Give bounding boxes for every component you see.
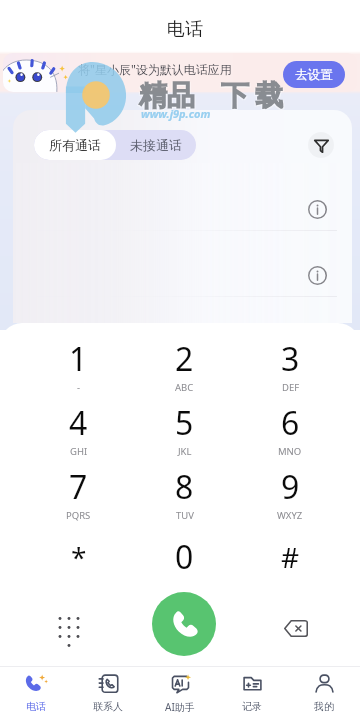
staticText: - <box>77 381 81 394</box>
staticText: 3 <box>281 337 300 381</box>
button[interactable]: 未接通话 <box>116 130 196 160</box>
staticText: 5 <box>175 401 194 445</box>
staticText: 电话 <box>26 700 46 713</box>
staticText: 联系人 <box>93 700 123 713</box>
staticText: 8 <box>175 465 194 509</box>
button[interactable]: 1 <box>26 333 131 397</box>
staticText: 未接通话 <box>130 137 182 153</box>
button[interactable]: 我的 <box>288 666 360 725</box>
staticText: 1 <box>69 337 88 381</box>
button[interactable]: 9 <box>237 461 343 525</box>
button[interactable]: AI助手 <box>144 666 216 725</box>
button[interactable]: 8 <box>131 461 237 525</box>
staticText: ABC <box>175 381 194 394</box>
staticText: 0 <box>175 535 194 579</box>
staticText: 精品 <box>138 79 194 114</box>
button[interactable]: 3 <box>237 333 343 397</box>
staticText: 我的 <box>314 700 334 713</box>
staticText: DEF <box>282 381 300 394</box>
staticText: 精品 <box>139 78 195 113</box>
staticText: 将"星小辰"设为默认电话应用 <box>78 61 232 77</box>
staticText: 7 <box>69 465 88 509</box>
button[interactable]: 7 <box>26 461 131 525</box>
staticText: TUV <box>176 509 194 522</box>
staticText: 精品 <box>140 79 196 114</box>
staticText: WXYZ <box>277 509 303 522</box>
button[interactable]: 所有通话 <box>34 130 116 160</box>
staticText: 所有通话 <box>49 137 101 153</box>
staticText: 2 <box>175 337 194 381</box>
staticText: 4 <box>69 401 88 445</box>
button[interactable]: 记录 <box>216 666 288 725</box>
button[interactable]: Call details <box>305 263 329 287</box>
button[interactable]: 去设置 <box>283 61 345 88</box>
staticText: MNO <box>278 445 302 458</box>
staticText: 下载 <box>218 78 286 113</box>
button[interactable]: Call <box>152 592 216 656</box>
staticText: 电话 <box>167 18 203 41</box>
button[interactable]: 5 <box>131 397 237 461</box>
staticText: AI助手 <box>165 700 195 714</box>
button[interactable]: Call details <box>13 176 352 242</box>
staticText: * <box>71 538 87 576</box>
staticText: 9 <box>281 465 300 509</box>
button[interactable]: Filter <box>308 132 334 158</box>
button[interactable]: * <box>26 525 131 589</box>
button[interactable]: 2 <box>131 333 237 397</box>
button[interactable]: Call details <box>13 242 352 308</box>
button[interactable]: 4 <box>26 397 131 461</box>
staticText: 下载 <box>217 79 285 114</box>
staticText: 6 <box>281 401 300 445</box>
staticText: PQRS <box>66 509 91 522</box>
button[interactable]: 电话 <box>0 666 72 725</box>
staticText: GHI <box>70 445 88 458</box>
button[interactable]: 联系人 <box>72 666 144 725</box>
button[interactable]: Call details <box>305 197 329 221</box>
button[interactable]: 0 <box>131 525 237 589</box>
button[interactable]: 6 <box>237 397 343 461</box>
staticText: # <box>281 538 300 576</box>
staticText: www.j9p.com <box>141 106 211 121</box>
staticText: 去设置 <box>295 67 333 83</box>
button[interactable]: # <box>237 525 343 589</box>
button[interactable]: Backspace <box>272 604 320 652</box>
staticText: 记录 <box>242 700 262 713</box>
staticText: JKL <box>178 445 192 458</box>
button[interactable]: Keypad <box>45 604 93 652</box>
staticText: 下载 <box>219 79 287 114</box>
